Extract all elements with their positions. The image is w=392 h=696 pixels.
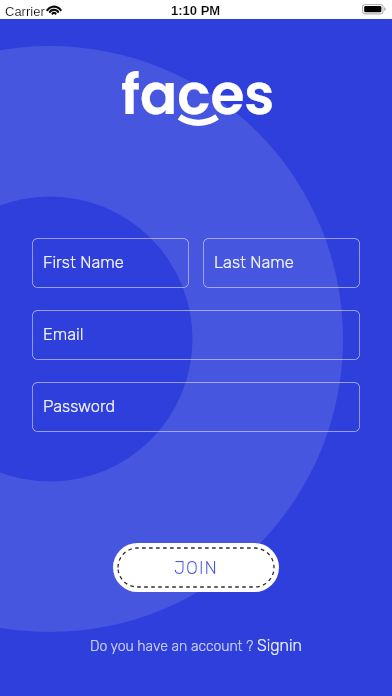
staticText: JOIN: [174, 557, 218, 578]
button[interactable]: JOIN: [113, 543, 279, 592]
button[interactable]: Email: [32, 310, 360, 360]
staticText: Email: [43, 325, 84, 345]
button[interactable]: First Name: [32, 238, 189, 288]
button[interactable]: Last Name: [203, 238, 360, 288]
staticText: 1:10 PM: [171, 3, 221, 18]
staticText: faces: [121, 56, 275, 133]
staticText: Carrier: [5, 4, 45, 19]
staticText: Password: [43, 397, 116, 417]
staticText: Last Name: [214, 253, 294, 273]
button[interactable]: Signin: [257, 636, 302, 655]
button[interactable]: Password: [32, 382, 360, 432]
staticText: First Name: [43, 253, 124, 273]
staticText: Do you have an account ?: [90, 638, 254, 655]
